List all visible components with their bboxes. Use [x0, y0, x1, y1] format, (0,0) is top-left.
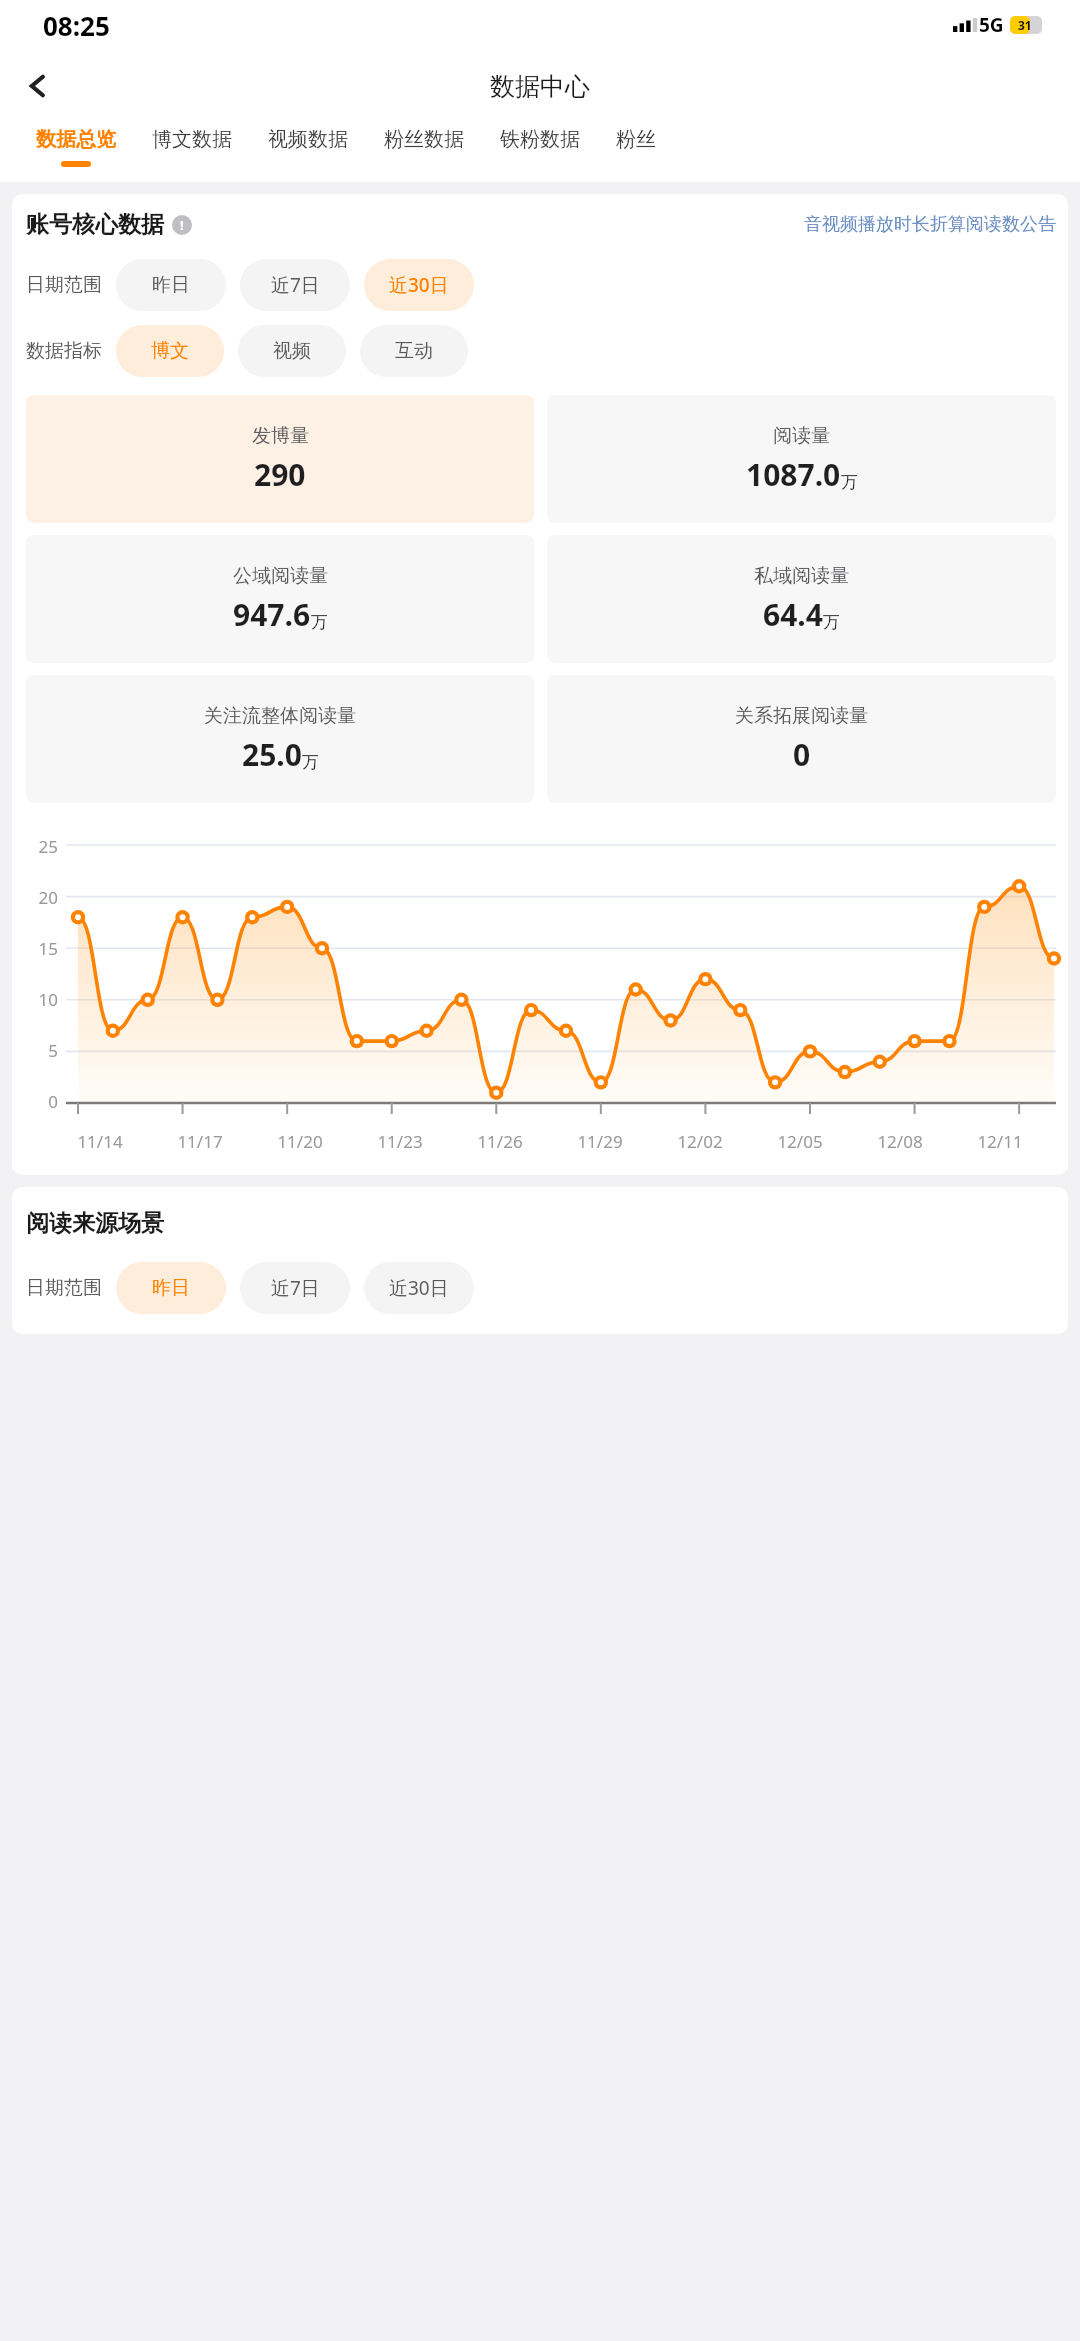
staticText: 粉丝数据	[384, 127, 464, 152]
button[interactable]: 昨日	[116, 259, 226, 311]
button[interactable]: 数据总览	[18, 122, 134, 182]
staticText: 11/20	[250, 1130, 350, 1153]
button[interactable]: 音视频播放时长折算阅读数公告	[804, 213, 1056, 236]
staticText: 发博量	[252, 424, 309, 448]
staticText: 昨日	[152, 1276, 190, 1300]
staticText: 近30日	[389, 1275, 449, 1301]
staticText: 关注流整体阅读量	[204, 704, 356, 728]
staticText: 日期范围	[26, 1276, 102, 1300]
staticText: 25.0	[242, 734, 302, 775]
staticText: 万	[311, 612, 328, 633]
staticText: 数据中心	[490, 71, 590, 102]
staticText: 1087.0	[746, 454, 841, 495]
staticText: 数据指标	[26, 339, 102, 363]
button[interactable]: 视频	[238, 325, 346, 377]
button[interactable]: 关注流整体阅读量	[26, 675, 534, 803]
staticText: 日期范围	[26, 273, 102, 297]
staticText: 视频	[273, 339, 311, 363]
staticText: 音视频播放时长折算阅读数公告	[804, 213, 1056, 236]
staticText: 昨日	[152, 273, 190, 297]
staticText: 阅读量	[773, 424, 830, 448]
staticText: 12/08	[850, 1130, 950, 1153]
button[interactable]: 关系拓展阅读量	[547, 675, 1056, 803]
staticText: 铁粉数据	[500, 127, 580, 152]
button[interactable]: 博文	[116, 325, 224, 377]
staticText: 粉丝	[616, 127, 656, 152]
staticText: 11/29	[550, 1130, 650, 1153]
staticText: 数据总览	[36, 127, 116, 152]
button[interactable]: Info	[172, 215, 192, 235]
button[interactable]: 博文数据	[134, 122, 250, 182]
staticText: 公域阅读量	[233, 564, 328, 588]
staticText: 20	[26, 886, 58, 909]
staticText: 10	[26, 988, 58, 1011]
staticText: 万	[823, 612, 840, 633]
staticText: 12/11	[950, 1130, 1050, 1153]
button[interactable]: 近30日	[364, 1262, 474, 1314]
button[interactable]: 近7日	[240, 259, 350, 311]
button[interactable]: 发博量	[26, 395, 534, 523]
button[interactable]: 公域阅读量	[26, 535, 534, 663]
staticText: 11/26	[450, 1130, 550, 1153]
staticText: 近7日	[271, 272, 320, 298]
staticText: 947.6	[233, 594, 311, 635]
button[interactable]: 私域阅读量	[547, 535, 1056, 663]
button[interactable]: 近7日	[240, 1262, 350, 1314]
button[interactable]: 昨日	[116, 1262, 226, 1314]
button[interactable]: 铁粉数据	[482, 122, 598, 182]
staticText: 12/05	[750, 1130, 850, 1153]
staticText: 私域阅读量	[754, 564, 849, 588]
staticText: 博文	[151, 339, 189, 363]
staticText: 近7日	[271, 1275, 320, 1301]
staticText: 5	[26, 1039, 58, 1062]
staticText: 12/02	[650, 1130, 750, 1153]
staticText: 11/14	[50, 1130, 150, 1153]
staticText: 11/17	[150, 1130, 250, 1153]
staticText: 关系拓展阅读量	[735, 704, 868, 728]
staticText: 视频数据	[268, 127, 348, 152]
staticText: 11/23	[350, 1130, 450, 1153]
staticText: 290	[254, 454, 306, 495]
staticText: 0	[26, 1090, 58, 1113]
button[interactable]: 粉丝	[598, 122, 674, 182]
staticText: 万	[302, 752, 319, 773]
staticText: 25	[26, 835, 58, 858]
staticText: 博文数据	[152, 127, 232, 152]
button[interactable]: 视频数据	[250, 122, 366, 182]
staticText: 31	[1018, 17, 1032, 33]
staticText: 64.4	[763, 594, 823, 635]
staticText: 万	[841, 472, 858, 493]
staticText: 08:25	[43, 8, 110, 43]
button[interactable]: 阅读量	[547, 395, 1056, 523]
button[interactable]: 近30日	[364, 259, 474, 311]
staticText: !	[180, 216, 184, 234]
staticText: 互动	[395, 339, 433, 363]
staticText: 0	[793, 734, 811, 775]
button[interactable]: Back	[0, 50, 76, 122]
staticText: 阅读来源场景	[26, 1209, 164, 1238]
button[interactable]: 互动	[360, 325, 468, 377]
staticText: 近30日	[389, 272, 449, 298]
staticText: 15	[26, 937, 58, 960]
button[interactable]: 粉丝数据	[366, 122, 482, 182]
staticText: 5G	[979, 12, 1004, 38]
staticText: 账号核心数据	[26, 210, 164, 239]
